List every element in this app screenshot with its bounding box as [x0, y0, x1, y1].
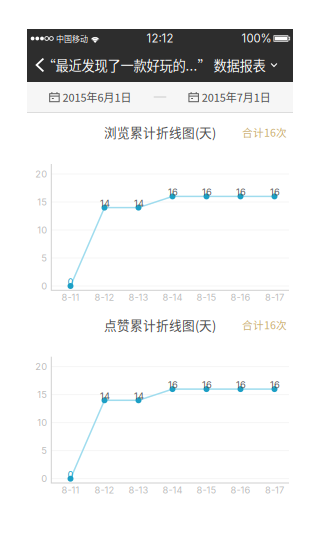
staticText: 8-14 — [162, 484, 182, 496]
staticText: 12:12 — [146, 32, 173, 45]
staticText: 100% — [241, 32, 271, 45]
staticText: 16 — [270, 187, 280, 198]
staticText: 16 — [168, 187, 178, 198]
staticText: 5 — [41, 445, 47, 456]
staticText: 16 — [236, 379, 246, 391]
staticText: 10 — [37, 417, 47, 428]
staticText: 16 — [270, 379, 280, 391]
staticText: 8-12 — [94, 292, 114, 303]
staticText: 8-13 — [128, 292, 148, 303]
staticText: 浏览累计折线图(天) — [104, 123, 216, 141]
button[interactable]: 2015年6月1日 — [46, 82, 135, 112]
staticText: 16 — [168, 379, 178, 391]
staticText: 16 — [202, 187, 212, 198]
staticText: 8-11 — [61, 292, 79, 303]
staticText: 15 — [37, 196, 47, 208]
staticText: 8-14 — [162, 292, 182, 303]
staticText: 5 — [41, 252, 47, 264]
staticText: 合计16次 — [242, 124, 287, 140]
button[interactable]: 2015年7月1日 — [185, 82, 274, 112]
staticText: 合计16次 — [242, 317, 287, 332]
staticText: 中国移动 — [56, 33, 88, 44]
staticText: 8-12 — [94, 484, 114, 496]
staticText: 14 — [100, 198, 110, 209]
staticText: 8-16 — [230, 292, 250, 303]
staticText: 8-17 — [265, 484, 284, 496]
staticText: 14 — [134, 390, 144, 402]
staticText: 10 — [37, 224, 47, 236]
staticText: 14 — [100, 390, 110, 402]
staticText: 20 — [35, 361, 47, 372]
staticText: 点赞累计折线图(天) — [104, 315, 216, 334]
staticText: 8-11 — [61, 484, 79, 496]
staticText: 8-17 — [265, 292, 284, 303]
staticText: 0 — [67, 276, 73, 287]
staticText: 8-16 — [230, 484, 250, 496]
staticText: “最近发现了一款好玩的...” 数据报表 — [42, 55, 265, 75]
staticText: 16 — [202, 379, 212, 391]
staticText: 2015年6月1日 — [63, 89, 132, 105]
button[interactable]: Back — [27, 48, 53, 82]
staticText: 14 — [134, 198, 144, 209]
staticText: 0 — [67, 469, 73, 480]
staticText: 0 — [41, 280, 47, 292]
staticText: 20 — [35, 168, 47, 180]
staticText: 2015年7月1日 — [202, 89, 271, 105]
staticText: 8-15 — [196, 484, 216, 496]
staticText: 8-15 — [196, 292, 216, 303]
staticText: 0 — [41, 473, 47, 484]
staticText: 15 — [37, 389, 47, 400]
staticText: 8-13 — [128, 484, 148, 496]
staticText: 16 — [236, 187, 246, 198]
